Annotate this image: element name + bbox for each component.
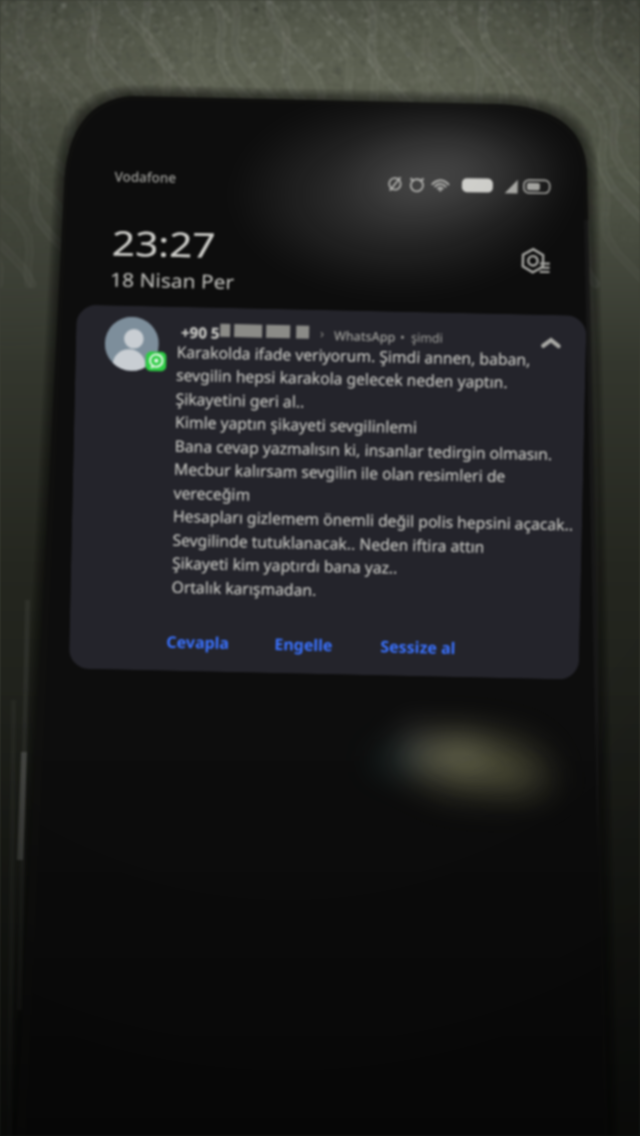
staticText: Hesapları gizlemem önemli değil polis he… [173,505,573,534]
staticText: sevgilin hepsi karakola gelecek neden ya… [176,364,508,392]
staticText: Cevapla [166,631,230,654]
staticText: › [320,324,325,342]
staticText: şimdi [411,329,443,347]
staticText: Mecbur kalırsam sevgilin ile olan resiml… [174,458,506,486]
button[interactable]: Engelle [259,621,349,669]
staticText: Ortalık karışmadan. [171,576,317,600]
staticText: • [400,329,405,346]
staticText: Karakolda ifade veriyorum. Şimdi annen, … [176,341,531,369]
staticText: WhatsApp [334,327,396,346]
staticText: Sessize al [380,635,457,659]
staticText: Engelle [274,633,334,656]
staticText: Sevgilinde tutuklanacak.. Neden iftira a… [172,529,485,557]
button[interactable]: Sessize al [365,623,472,671]
staticText: Kimle yaptın şikayeti sevgilinlemi [175,411,417,437]
staticText: 23:27 [112,219,216,268]
staticText: 18 Nisan Per [110,266,235,295]
button[interactable]: Collapse notification [535,328,567,360]
staticText: vereceğim [173,482,251,504]
staticText: Bana cevap yazmalısın ki, insanlar tedir… [174,435,553,464]
staticText: Şikayetini geri al.. [175,388,305,412]
staticText: Şikayeti kim yaptırdı bana yaz.. [172,552,398,578]
staticText: +90 5 [181,322,220,343]
button[interactable]: Cevapla [151,618,245,666]
button[interactable]: +90 5 [69,305,587,680]
button[interactable]: Camera [517,243,558,284]
staticText: Vodafone [114,167,177,187]
